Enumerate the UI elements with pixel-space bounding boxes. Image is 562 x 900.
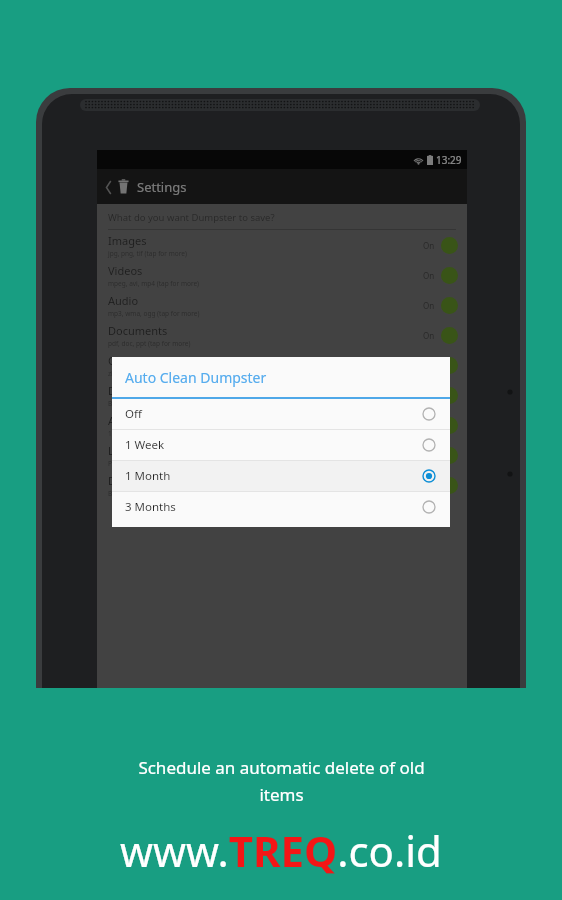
button[interactable]: 3 Months — [112, 492, 450, 522]
button[interactable]: Toggle Delete Permanently — [441, 387, 458, 404]
button[interactable]: Documents — [97, 320, 467, 350]
staticText: mp3, wma, ogg (tap for more) — [108, 309, 200, 318]
button[interactable]: Toggle Auto Clean Dumpster — [441, 417, 458, 434]
staticText: pdf, doc, ppt (tap for more) — [108, 339, 191, 348]
button[interactable]: Dumpster Cloud — [97, 470, 467, 500]
button[interactable]: Toggle Videos — [441, 267, 458, 284]
staticText: On — [423, 270, 435, 281]
button[interactable]: Other — [97, 350, 467, 380]
button[interactable]: Back — [97, 169, 467, 204]
staticText: Lock Screen — [108, 443, 170, 458]
button[interactable]: 1 Week — [112, 430, 450, 460]
staticText: On — [423, 450, 435, 461]
staticText: Dumpster Cloud — [108, 473, 193, 488]
button[interactable]: Back — [103, 177, 115, 197]
button[interactable]: Delete Permanently — [97, 380, 467, 410]
staticText: What do you want Dumpster to save? — [108, 211, 275, 224]
staticText: mpeg, avi, mp4 (tap for more) — [108, 279, 200, 288]
staticText: Bypass Dumpster — [108, 399, 162, 408]
staticText: Settings — [137, 178, 187, 196]
staticText: On — [423, 480, 435, 491]
button[interactable]: 1 Month — [112, 461, 450, 491]
staticText: Videos — [108, 263, 143, 278]
staticText: Audio — [108, 293, 139, 308]
staticText: On — [423, 240, 435, 251]
staticText: jpg, png, tif (tap for more) — [108, 249, 187, 258]
staticText: On — [423, 420, 435, 431]
button[interactable]: Toggle Images — [441, 237, 458, 254]
button[interactable]: Audio — [97, 290, 467, 320]
button[interactable]: Videos — [97, 260, 467, 290]
button[interactable]: Off — [112, 399, 450, 429]
staticText: On — [423, 300, 435, 311]
button[interactable]: Auto Clean Dumpster — [97, 410, 467, 440]
button[interactable]: Toggle Documents — [441, 327, 458, 344]
button[interactable]: Toggle Other — [441, 357, 458, 374]
staticText: Off — [125, 406, 422, 422]
staticText: Images — [108, 233, 147, 248]
staticText: 1 Week — [125, 437, 422, 453]
staticText: 3 Months — [125, 499, 422, 515]
button[interactable]: Toggle Dumpster Cloud — [441, 477, 458, 494]
staticText: Auto Clean Dumpster — [125, 368, 267, 387]
staticText: Documents — [108, 323, 168, 338]
staticText: 1 Month — [125, 468, 422, 484]
button[interactable]: Toggle Lock Screen — [441, 447, 458, 464]
staticText: On — [423, 330, 435, 341]
button[interactable]: Toggle Audio — [441, 297, 458, 314]
button[interactable]: Images — [97, 230, 467, 260]
staticText: Schedule an automatic delete of old item… — [138, 756, 425, 806]
staticText: Delete Permanently — [108, 383, 211, 398]
staticText: Auto Clean Dumpster — [108, 413, 220, 428]
staticText: 13:29 — [436, 153, 462, 167]
staticText: Back up your items — [108, 489, 167, 498]
button[interactable]: Lock Screen — [97, 440, 467, 470]
staticText: On — [423, 390, 435, 401]
staticText: www.TREQ.co.id — [120, 822, 442, 879]
staticText: Other — [108, 353, 139, 368]
staticText: zip, apk, rar (tap for more) — [108, 369, 188, 378]
staticText: Protect your items — [108, 459, 165, 468]
staticText: 1 Month — [108, 429, 134, 438]
